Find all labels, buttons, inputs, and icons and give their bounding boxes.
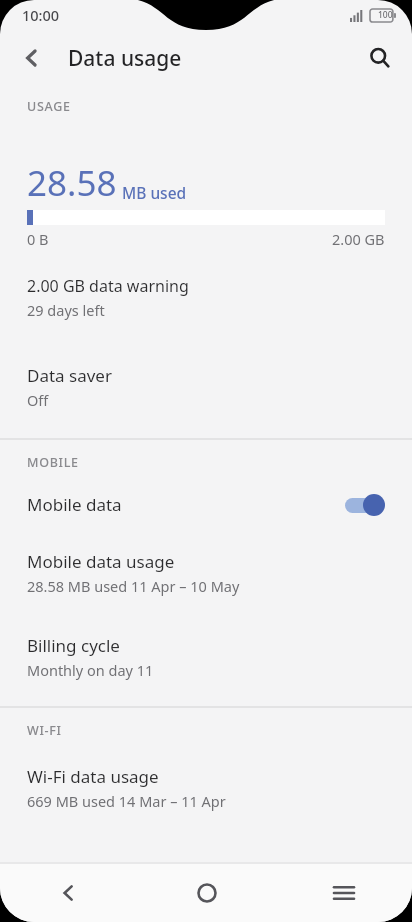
- staticText: 669 MB used 14 Mar – 11 Apr: [27, 791, 226, 811]
- staticText: WI-FI: [27, 722, 412, 739]
- staticText: Off: [27, 390, 49, 410]
- button[interactable]: Mobile data usage: [0, 550, 412, 596]
- button[interactable]: Home: [138, 864, 275, 922]
- staticText: Billing cycle: [27, 634, 120, 657]
- button[interactable]: 2.00 GB data warning: [0, 275, 412, 320]
- staticText: 0 B: [27, 229, 49, 249]
- staticText: 2.00 GB data warning: [27, 275, 189, 297]
- staticText: 29 days left: [27, 300, 105, 320]
- staticText: 28.58 MB used 11 Apr – 10 May: [27, 576, 240, 596]
- staticText: 2.00 GB: [332, 229, 385, 249]
- button[interactable]: Back: [0, 864, 138, 922]
- button[interactable]: Data saver: [0, 364, 412, 410]
- staticText: MOBILE: [27, 454, 412, 471]
- button[interactable]: Wi-Fi data usage: [0, 765, 412, 811]
- staticText: Wi-Fi data usage: [27, 765, 159, 788]
- staticText: 10:00: [22, 5, 60, 25]
- staticText: Data saver: [27, 364, 112, 387]
- staticText: 28.58: [27, 159, 117, 207]
- staticText: MB used: [122, 182, 187, 203]
- staticText: Data usage: [68, 44, 182, 73]
- button[interactable]: Recent apps: [275, 864, 412, 922]
- staticText: 100: [378, 9, 393, 21]
- staticText: Mobile data: [27, 493, 122, 516]
- staticText: USAGE: [27, 98, 412, 115]
- button[interactable]: Billing cycle: [0, 634, 412, 680]
- staticText: Mobile data usage: [27, 550, 175, 573]
- staticText: Monthly on day 11: [27, 660, 154, 680]
- button[interactable]: Mobile data: [0, 493, 412, 516]
- button[interactable]: Back: [10, 36, 54, 80]
- button[interactable]: Search: [358, 36, 402, 80]
